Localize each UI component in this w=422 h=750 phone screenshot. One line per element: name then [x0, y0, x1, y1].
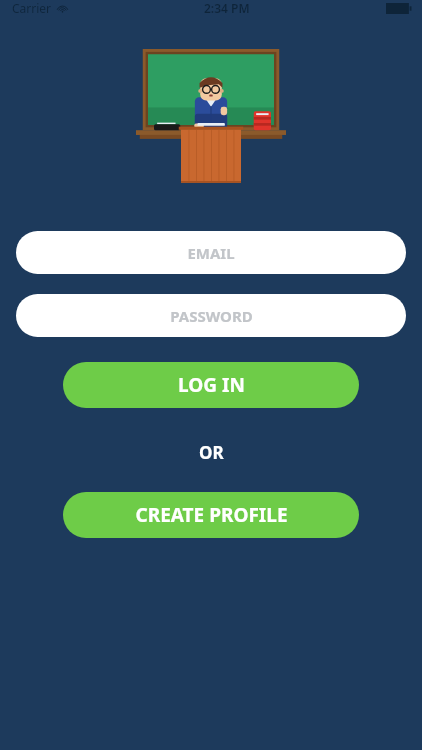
staticText: CREATE PROFILE [135, 502, 288, 528]
staticText: 2:34 PM [204, 0, 250, 16]
button[interactable]: PASSWORD [16, 294, 406, 337]
button[interactable]: EMAIL [16, 231, 406, 274]
staticText: LOG IN [178, 372, 245, 398]
staticText: EMAIL [187, 243, 235, 263]
staticText: Carrier [12, 0, 52, 16]
staticText: OR [199, 441, 224, 464]
staticText: PASSWORD [170, 306, 253, 326]
button[interactable]: CREATE PROFILE [63, 492, 359, 538]
button[interactable]: LOG IN [63, 362, 359, 408]
other: Teacher at chalkboard illustration [136, 49, 286, 189]
